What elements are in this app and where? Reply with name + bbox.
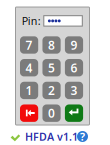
- button[interactable]: Enter: [65, 104, 83, 122]
- button[interactable]: Help: [77, 131, 88, 142]
- staticText: 2: [48, 82, 55, 98]
- button[interactable]: 1: [20, 82, 38, 99]
- button[interactable]: 9: [65, 36, 83, 54]
- staticText: 1: [26, 82, 33, 98]
- staticText: 8: [48, 37, 55, 53]
- staticText: 4: [26, 60, 33, 76]
- staticText: 6: [70, 60, 77, 76]
- staticText: 0: [48, 105, 55, 121]
- staticText: Pin:: [22, 14, 41, 28]
- button[interactable]: 8: [42, 36, 61, 54]
- staticText: 5: [48, 60, 55, 76]
- button[interactable]: 4: [20, 59, 38, 76]
- staticText: 3: [70, 82, 77, 98]
- button[interactable]: 3: [65, 82, 83, 99]
- button[interactable]: Backspace: [20, 104, 38, 122]
- button[interactable]: 0: [42, 104, 61, 122]
- staticText: HFDA v1.1: [25, 129, 78, 144]
- staticText: ?: [80, 129, 85, 144]
- button[interactable]: 6: [65, 59, 83, 76]
- staticText: 7: [26, 37, 33, 53]
- button[interactable]: 2: [42, 82, 61, 99]
- button[interactable]: 5: [42, 59, 61, 76]
- staticText: 9: [70, 37, 77, 53]
- button[interactable]: 7: [20, 36, 38, 54]
